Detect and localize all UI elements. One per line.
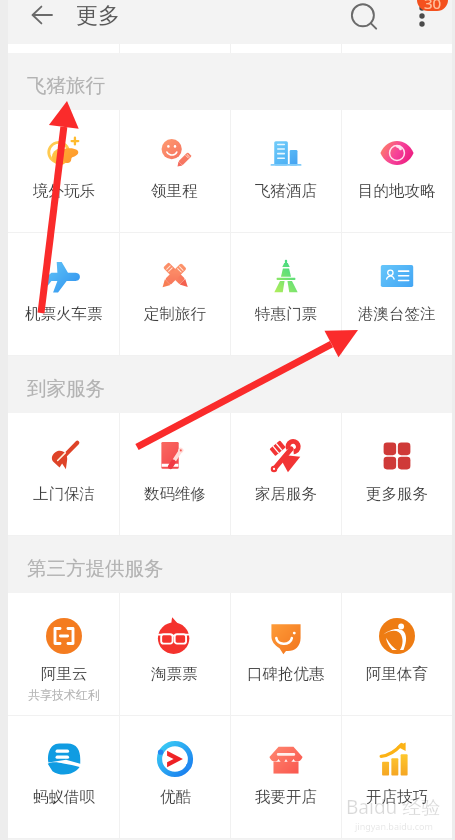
staticText: 开店技巧 bbox=[366, 787, 428, 807]
staticText: 机票火车票 bbox=[25, 304, 103, 324]
staticText: 共享技术红利 bbox=[28, 687, 100, 702]
button[interactable]: 我要开店 bbox=[230, 716, 341, 839]
staticText: 飞猪酒店 bbox=[255, 181, 317, 201]
staticText: 家居服务 bbox=[255, 484, 317, 504]
staticText: 数码维修 bbox=[144, 484, 206, 504]
button[interactable]: 更多服务 bbox=[341, 413, 452, 536]
button[interactable]: 淘票票 bbox=[119, 593, 230, 716]
button[interactable]: 口碑抢优惠 bbox=[230, 593, 341, 716]
staticText: 淘票票 bbox=[151, 664, 198, 684]
button[interactable]: Back bbox=[20, 0, 64, 37]
button[interactable]: 家居服务 bbox=[230, 413, 341, 536]
staticText: 上门保洁 bbox=[33, 484, 95, 504]
button[interactable]: 上门保洁 bbox=[8, 413, 119, 536]
button[interactable]: Search bbox=[342, 0, 386, 39]
staticText: 30 bbox=[424, 0, 442, 11]
staticText: 领里程 bbox=[151, 181, 198, 201]
staticText: 更多服务 bbox=[366, 484, 428, 504]
staticText: 特惠门票 bbox=[255, 304, 317, 324]
staticText: 优酷 bbox=[160, 787, 191, 807]
staticText: 我要开店 bbox=[255, 787, 317, 807]
button[interactable]: 定制旅行 bbox=[119, 233, 230, 356]
staticText: 第三方提供服务 bbox=[27, 556, 164, 581]
button[interactable]: 机票火车票 bbox=[8, 233, 119, 356]
staticText: 定制旅行 bbox=[144, 304, 206, 324]
staticText: 更多 bbox=[76, 2, 120, 30]
button[interactable]: 优酷 bbox=[119, 716, 230, 839]
staticText: 口碑抢优惠 bbox=[247, 664, 325, 684]
staticText: jingyan.baidu.com bbox=[355, 820, 433, 832]
staticText: 飞猪旅行 bbox=[27, 73, 105, 98]
button[interactable]: More options bbox=[400, 0, 444, 38]
staticText: 境外玩乐 bbox=[33, 181, 95, 201]
staticText: 阿里体育 bbox=[366, 664, 428, 684]
button[interactable]: 境外玩乐 bbox=[8, 110, 119, 233]
button[interactable]: 飞猪酒店 bbox=[230, 110, 341, 233]
button[interactable]: 蚂蚁借呗 bbox=[8, 716, 119, 839]
button[interactable]: 目的地攻略 bbox=[341, 110, 452, 233]
button[interactable]: 阿里云 bbox=[8, 593, 119, 716]
staticText: 目的地攻略 bbox=[358, 181, 436, 201]
button[interactable]: 特惠门票 bbox=[230, 233, 341, 356]
staticText: Baidu 经验 bbox=[346, 794, 441, 820]
button[interactable]: 领里程 bbox=[119, 110, 230, 233]
staticText: 蚂蚁借呗 bbox=[33, 787, 95, 807]
button[interactable]: 港澳台签注 bbox=[341, 233, 452, 356]
staticText: 港澳台签注 bbox=[358, 304, 436, 324]
button[interactable]: 数码维修 bbox=[119, 413, 230, 536]
staticText: 到家服务 bbox=[27, 376, 105, 401]
button[interactable]: 阿里体育 bbox=[341, 593, 452, 716]
button[interactable]: 开店技巧 bbox=[341, 716, 452, 839]
staticText: 阿里云 bbox=[41, 664, 88, 684]
